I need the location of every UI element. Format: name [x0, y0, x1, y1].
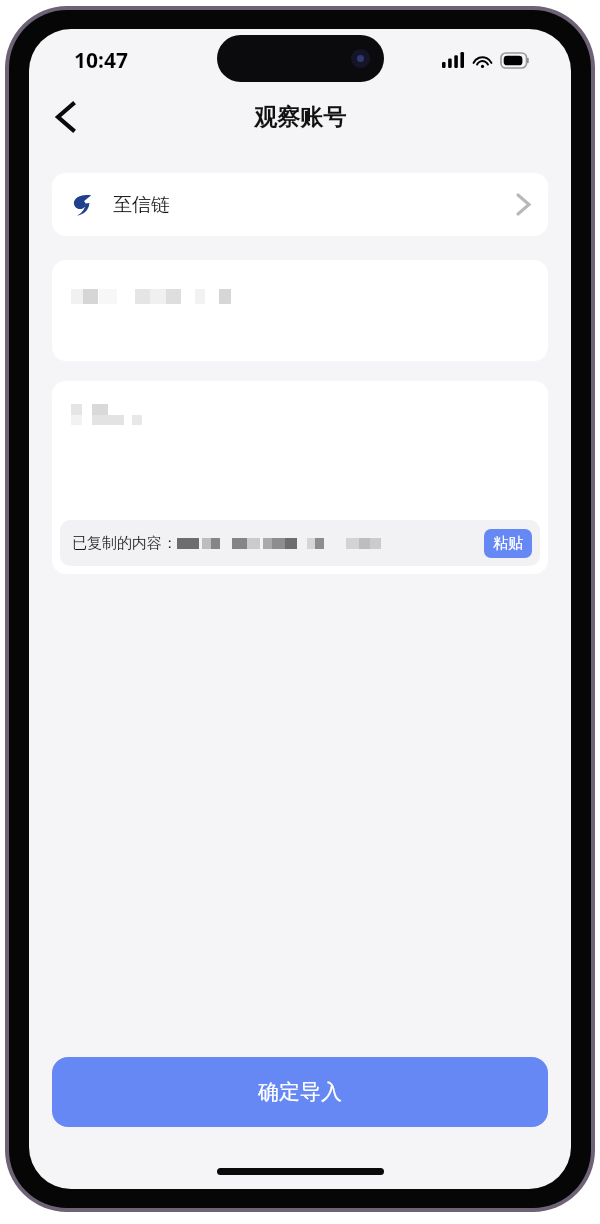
- button[interactable]: 粘贴: [484, 529, 532, 558]
- staticText: 至信链: [113, 193, 170, 217]
- staticText: 粘贴: [493, 534, 523, 553]
- button[interactable]: 确定导入: [52, 1057, 548, 1127]
- button[interactable]: 至信链: [52, 173, 548, 236]
- button[interactable]: [52, 260, 548, 361]
- button[interactable]: Back: [41, 93, 89, 141]
- staticText: 确定导入: [258, 1079, 342, 1105]
- staticText: 10:47: [74, 46, 128, 75]
- staticText: 观察账号: [254, 103, 346, 132]
- staticText: 已复制的内容：: [72, 534, 177, 553]
